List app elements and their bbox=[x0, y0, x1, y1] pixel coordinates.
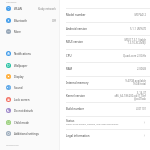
staticText: CPU bbox=[66, 54, 72, 58]
button[interactable]: Child mode bbox=[0, 117, 59, 128]
button[interactable]: Lock screen bbox=[0, 94, 59, 105]
staticText: MIUI version bbox=[66, 40, 83, 44]
button[interactable]: Kernel version bbox=[60, 89, 150, 102]
button[interactable]: Model number bbox=[60, 8, 150, 21]
staticText: ACCOUNTS bbox=[6, 143, 19, 146]
button[interactable]: Build number bbox=[60, 102, 150, 115]
staticText: Off bbox=[52, 19, 56, 23]
button[interactable]: Display bbox=[0, 71, 59, 82]
staticText: Android version bbox=[66, 27, 87, 31]
staticText: Xiaby network bbox=[38, 7, 56, 11]
staticText: LXI1101 bbox=[135, 107, 146, 111]
button[interactable]: Android version bbox=[60, 22, 150, 35]
staticText: Bluetooth bbox=[14, 19, 28, 23]
button[interactable]: WLAN bbox=[0, 3, 59, 14]
staticText: MI PAD 2 bbox=[134, 13, 146, 17]
staticText: Notifications bbox=[14, 52, 31, 56]
staticText: RAM bbox=[66, 67, 73, 71]
button[interactable]: Notifications bbox=[0, 48, 59, 59]
staticText: Lock screen bbox=[14, 98, 30, 102]
staticText: Model number bbox=[66, 13, 86, 17]
button[interactable]: Legal information bbox=[60, 129, 150, 142]
button[interactable]: Wallpaper bbox=[0, 60, 59, 71]
button[interactable]: CPU bbox=[60, 49, 150, 62]
staticText: Status bbox=[66, 119, 75, 123]
button[interactable]: More bbox=[0, 26, 59, 37]
button[interactable]: MIUI version bbox=[60, 35, 150, 48]
staticText: Additional settings bbox=[14, 132, 39, 136]
staticText: WLAN bbox=[14, 7, 22, 11]
staticText: Status of the battery, network, and othe… bbox=[66, 123, 119, 126]
staticText: Legal information bbox=[66, 134, 90, 138]
staticText: Child mode bbox=[14, 121, 29, 125]
staticText: Kernel version bbox=[66, 94, 85, 98]
staticText: Sound bbox=[14, 86, 23, 90]
staticText: 2.00GB bbox=[136, 67, 146, 71]
button[interactable]: Do not disturb bbox=[0, 105, 59, 116]
button[interactable]: Status bbox=[60, 116, 150, 129]
staticText: 9.47GB available 16GB total bbox=[125, 79, 146, 86]
staticText: 3.14.37 x86_64-186200-gb1170ef gcc47bak bbox=[114, 91, 146, 101]
staticText: Wallpaper bbox=[14, 64, 28, 68]
button[interactable]: Additional settings bbox=[0, 128, 59, 139]
staticText: Display bbox=[14, 75, 24, 79]
staticText: 5.1.1 LMY47I bbox=[129, 27, 146, 31]
staticText: Build number bbox=[66, 107, 84, 111]
staticText: GENERAL bbox=[6, 0, 17, 3]
staticText: Do not disturb bbox=[14, 109, 34, 113]
button[interactable]: Bluetooth bbox=[0, 15, 59, 26]
button[interactable]: RAM bbox=[60, 62, 150, 75]
staticText: MIUI 7.3.1 Stable 7.3.1(LXCLMEJ) bbox=[124, 38, 146, 45]
staticText: Quad-core 2.0GHz bbox=[123, 54, 146, 58]
button[interactable]: Sound bbox=[0, 82, 59, 93]
staticText: Internal memory bbox=[66, 81, 89, 85]
staticText: More bbox=[14, 30, 21, 34]
button[interactable]: Internal memory bbox=[60, 76, 150, 89]
